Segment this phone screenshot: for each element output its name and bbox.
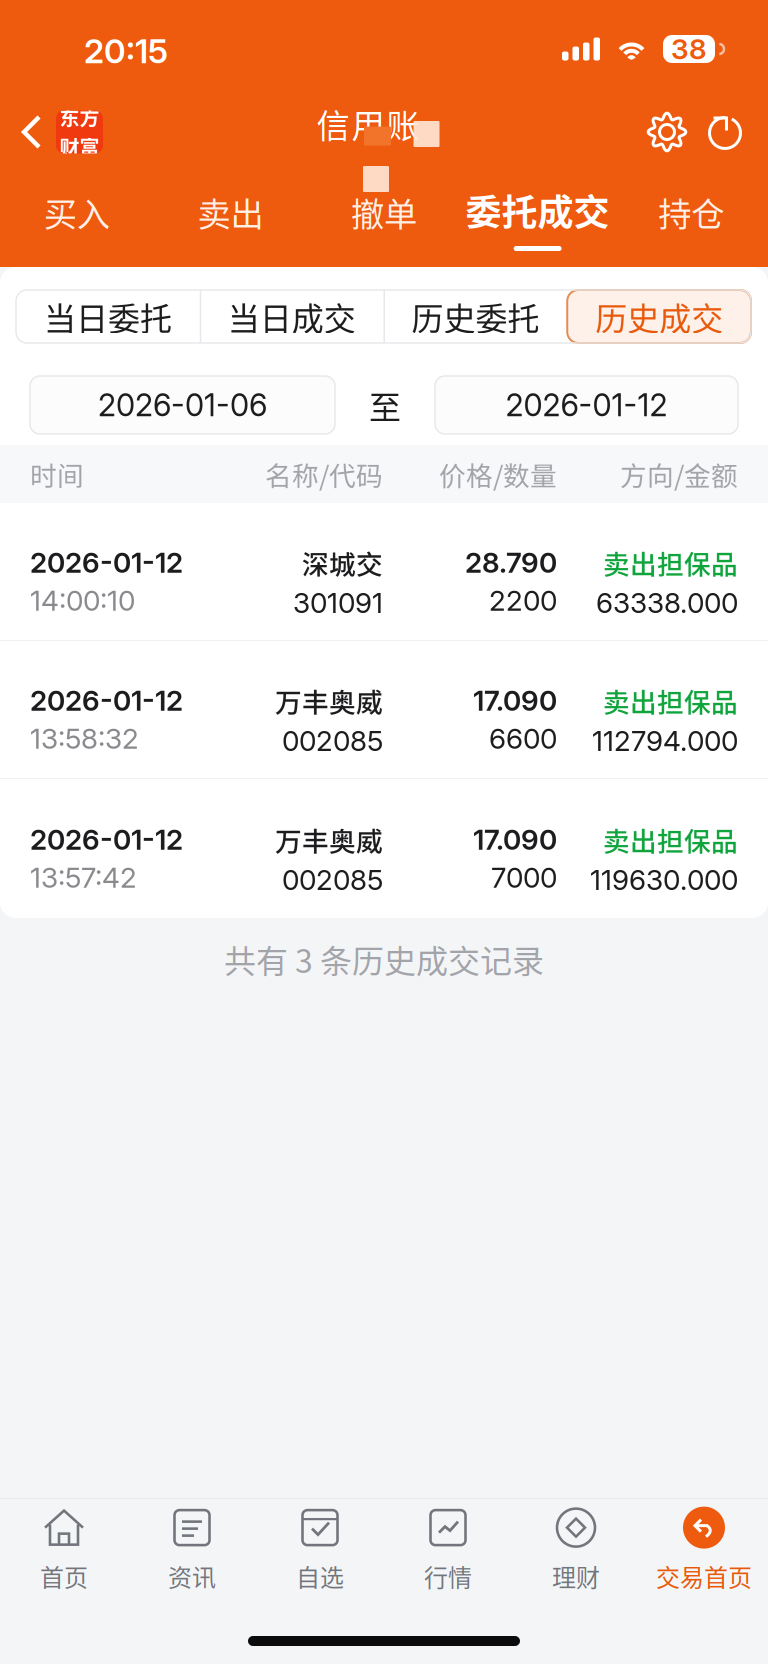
staticText: 历史成交	[595, 293, 723, 340]
button[interactable]: 当日委托	[16, 290, 200, 343]
staticText: 卖出	[197, 188, 263, 236]
staticText: 委托成交	[466, 184, 610, 236]
staticText: 20:15	[84, 31, 168, 71]
staticText: 13:58:32	[30, 721, 139, 755]
staticText: 119630.000	[590, 863, 738, 897]
staticText: 002085	[282, 724, 383, 758]
button[interactable]: Settings	[638, 94, 696, 170]
button[interactable]: 2026-01-12	[435, 376, 738, 434]
staticText: 账	[386, 99, 419, 148]
staticText: 东方	[59, 102, 99, 131]
button[interactable]: 卖出	[154, 174, 307, 267]
staticText: 6600	[489, 721, 557, 755]
button[interactable]: 2026-01-12	[0, 503, 768, 641]
staticText: 理财	[552, 1559, 600, 1593]
staticText: 2026-01-12	[30, 823, 183, 856]
staticText: 卖出担保品	[603, 543, 738, 582]
staticText: 时间	[30, 455, 84, 493]
staticText: 至	[369, 382, 401, 428]
staticText: 用	[351, 99, 384, 148]
staticText: 自选	[296, 1559, 344, 1593]
button[interactable]: 委托成交	[461, 174, 614, 267]
staticText: 名称/代码	[265, 455, 383, 493]
staticText: 价格/数量	[439, 455, 557, 493]
staticText: 301091	[293, 586, 383, 620]
staticText: 2026-01-12	[505, 386, 667, 423]
staticText: 万丰奥威	[275, 681, 383, 720]
button[interactable]: 资讯	[128, 1499, 256, 1599]
button[interactable]: 买入	[0, 174, 154, 267]
staticText: 历史委托	[411, 293, 539, 340]
staticText: 002085	[282, 863, 383, 897]
button[interactable]: 2026-01-06	[30, 376, 335, 434]
staticText: 卖出担保品	[603, 820, 738, 859]
button[interactable]: Refresh	[696, 94, 754, 170]
button[interactable]: 行情	[384, 1499, 512, 1599]
staticText: 撤单	[351, 188, 417, 236]
staticText: 2026-01-12	[30, 684, 183, 717]
staticText: 13:57:42	[30, 860, 137, 894]
staticText: 方向/金额	[620, 455, 738, 493]
staticText: 38	[671, 32, 707, 66]
button[interactable]: 自选	[256, 1499, 384, 1599]
button[interactable]: 历史委托	[383, 290, 567, 343]
button[interactable]: 历史成交	[567, 290, 751, 343]
button[interactable]: 2026-01-12	[0, 779, 768, 918]
button[interactable]: 交易首页	[640, 1499, 768, 1599]
button[interactable]: 撤单	[307, 174, 461, 267]
staticText: 资讯	[168, 1559, 216, 1593]
button[interactable]: Back	[0, 90, 103, 174]
staticText: 14:00:10	[30, 583, 135, 617]
staticText: 首页	[40, 1559, 88, 1593]
button[interactable]: 持仓	[614, 174, 768, 267]
staticText: 行情	[424, 1559, 472, 1593]
button[interactable]: 首页	[0, 1499, 128, 1599]
staticText: 持仓	[658, 188, 724, 236]
staticText: 交易首页	[656, 1559, 752, 1593]
staticText: 112794.000	[592, 724, 738, 758]
staticText: 2026-01-12	[30, 546, 183, 579]
button[interactable]: 2026-01-12	[0, 641, 768, 779]
staticText: 17.090	[473, 684, 557, 717]
button[interactable]: 理财	[512, 1499, 640, 1599]
staticText: 买入	[44, 188, 110, 236]
staticText: 当日委托	[44, 293, 172, 340]
staticText: 共有 3 条历史成交记录	[224, 936, 544, 982]
staticText: 2026-01-06	[98, 386, 267, 423]
staticText: 信	[316, 99, 349, 148]
staticText: 17.090	[473, 823, 557, 856]
staticText: 2200	[489, 583, 557, 617]
staticText: 财富	[59, 132, 99, 161]
staticText: 卖出担保品	[603, 681, 738, 720]
button[interactable]: 当日成交	[200, 290, 384, 343]
staticText: 28.790	[465, 546, 557, 579]
staticText: 当日成交	[228, 293, 356, 340]
staticText: 万丰奥威	[275, 820, 383, 859]
staticText: 7000	[491, 860, 557, 894]
staticText: 深城交	[302, 543, 383, 582]
staticText: 63338.000	[596, 586, 738, 620]
